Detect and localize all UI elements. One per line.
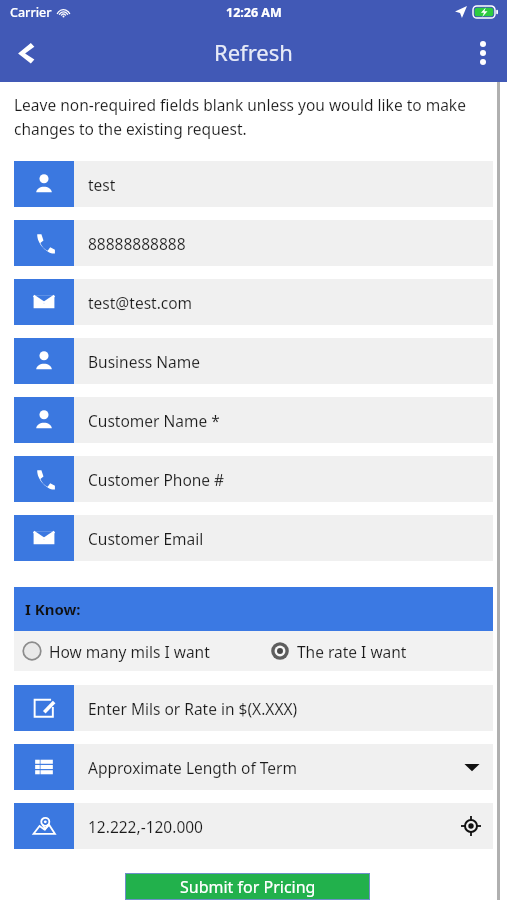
other: Mail <box>14 279 74 325</box>
button[interactable]: Mail <box>14 515 493 561</box>
staticText: Carrier <box>10 4 52 21</box>
button[interactable]: Back <box>0 27 52 79</box>
other: MapPin <box>14 803 74 849</box>
button[interactable]: How many mils I want <box>22 631 262 671</box>
staticText: test <box>88 174 116 195</box>
other: Edit <box>14 685 74 731</box>
button[interactable]: Phone <box>14 220 493 266</box>
staticText: Customer Name * <box>88 410 220 431</box>
button[interactable]: Edit <box>14 685 493 731</box>
staticText: Enter Mils or Rate in $(X.XXX) <box>88 698 298 719</box>
staticText: 12:26 AM <box>226 4 282 21</box>
other: Phone <box>14 456 74 502</box>
other: Person <box>14 161 74 207</box>
button[interactable]: Mail <box>14 279 493 325</box>
staticText: Customer Phone # <box>88 469 225 490</box>
other: ListGrid <box>14 744 74 790</box>
other: Phone <box>14 220 74 266</box>
button[interactable]: Submit for Pricing <box>126 874 369 899</box>
staticText: test@test.com <box>88 292 193 313</box>
button[interactable]: Person <box>14 397 493 443</box>
button[interactable]: More options <box>459 29 507 77</box>
staticText: I Know: <box>25 599 81 619</box>
staticText: Business Name <box>88 351 200 372</box>
button[interactable]: Phone <box>14 456 493 502</box>
staticText: Customer Email <box>88 528 204 549</box>
button[interactable]: Person <box>14 161 493 207</box>
button[interactable]: ListGrid <box>14 744 493 790</box>
other: Person <box>14 397 74 443</box>
button[interactable]: I Know: <box>14 587 493 631</box>
other: Person <box>14 338 74 384</box>
button[interactable]: MapPin <box>14 803 493 849</box>
staticText: 12.222,-120.000 <box>88 816 203 837</box>
staticText: The rate I want <box>297 641 407 662</box>
staticText: 88888888888 <box>88 233 186 254</box>
staticText: Leave non-required fields blank unless y… <box>14 94 466 139</box>
staticText: Approximate Length of Term <box>88 757 297 778</box>
staticText: Refresh <box>214 37 293 67</box>
button[interactable]: Person <box>14 338 493 384</box>
staticText: Submit for Pricing <box>180 876 316 898</box>
button[interactable]: The rate I want <box>270 631 407 671</box>
other: Mail <box>14 515 74 561</box>
staticText: How many mils I want <box>49 641 210 662</box>
